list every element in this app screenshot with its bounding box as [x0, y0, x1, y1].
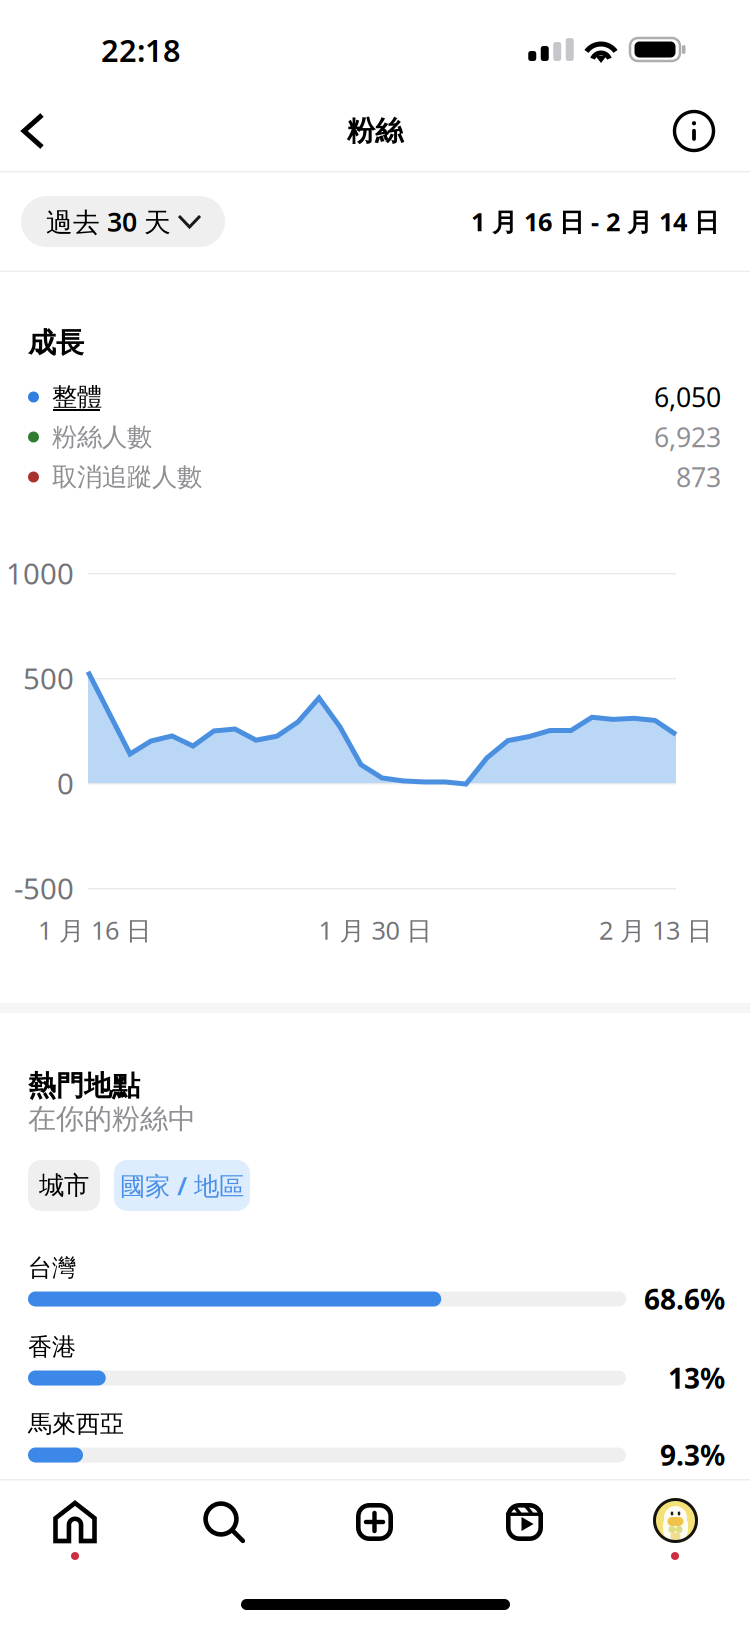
staticText: 城市 [39, 1170, 89, 1201]
staticText: 1000 [6, 553, 74, 592]
button[interactable]: Information [657, 96, 731, 166]
staticText: 馬來西亞 [28, 1409, 124, 1439]
staticText: 成長 [28, 326, 84, 360]
staticText: 過去 30 天 [46, 204, 171, 239]
button[interactable]: Search [150, 1479, 300, 1567]
button[interactable]: Back [0, 96, 66, 166]
staticText: 68.6% [644, 1280, 725, 1318]
staticText: 粉絲 [347, 114, 403, 148]
staticText: 熱門地點 [28, 1069, 140, 1103]
staticText: 9.3% [660, 1436, 725, 1474]
staticText: 6,050 [654, 379, 721, 415]
staticText: 2 月 13 日 [599, 913, 712, 947]
staticText: 873 [676, 459, 721, 495]
staticText: 0 [57, 763, 74, 802]
staticText: 6,923 [654, 419, 721, 455]
staticText: 1 月 16 日 - 2 月 14 日 [471, 205, 719, 238]
staticText: 在你的粉絲中 [28, 1102, 196, 1136]
button[interactable]: Home [0, 1479, 150, 1567]
staticText: 13% [668, 1359, 725, 1397]
button[interactable]: Reels [450, 1479, 600, 1567]
button[interactable]: 城市 [28, 1160, 100, 1211]
staticText: 台灣 [28, 1253, 76, 1283]
button[interactable]: 國家 / 地區 [114, 1160, 250, 1211]
staticText: 1 月 16 日 [38, 913, 151, 947]
staticText: 國家 / 地區 [120, 1169, 244, 1202]
button[interactable]: 過去 30 天 [21, 196, 225, 247]
staticText: 500 [23, 658, 74, 697]
staticText: -500 [14, 868, 74, 907]
staticText: 整體 [52, 381, 102, 412]
staticText: 1 月 30 日 [318, 913, 431, 947]
staticText: 22:18 [101, 30, 181, 70]
staticText: 粉絲人數 [52, 421, 152, 452]
button[interactable]: New post [300, 1479, 450, 1567]
staticText: 香港 [28, 1332, 76, 1362]
button[interactable]: Profile [600, 1479, 750, 1567]
staticText: 取消追蹤人數 [52, 461, 202, 492]
